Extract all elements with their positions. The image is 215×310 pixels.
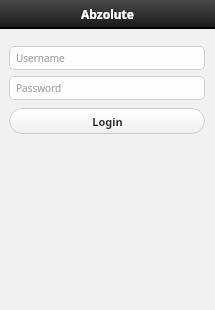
staticText: Login <box>92 114 123 129</box>
button[interactable]: Password <box>9 76 205 100</box>
staticText: Abzolute <box>81 6 134 22</box>
staticText: Username <box>16 51 65 65</box>
button[interactable]: Username <box>9 46 205 70</box>
staticText: Password <box>16 81 62 95</box>
button[interactable]: Login <box>9 108 205 134</box>
